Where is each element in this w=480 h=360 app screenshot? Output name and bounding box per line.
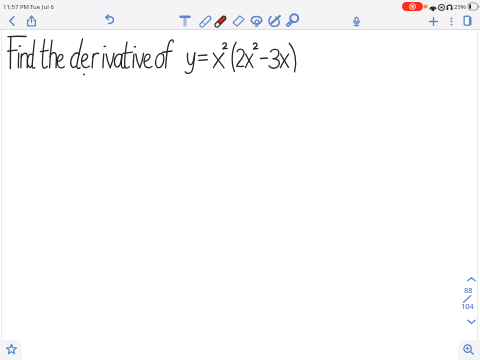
- staticText: 88: [464, 285, 473, 295]
- button[interactable]: Favorite: [0, 340, 22, 360]
- button[interactable]: Pages: [460, 13, 476, 29]
- button[interactable]: Zoom in: [458, 340, 480, 360]
- button[interactable]: Pen: [198, 13, 213, 29]
- staticText: 25%: [454, 3, 466, 11]
- button[interactable]: Highlighter: [283, 13, 300, 29]
- button[interactable]: Undo: [103, 11, 115, 27]
- button[interactable]: Lasso: [248, 13, 265, 29]
- button[interactable]: Eraser: [230, 13, 247, 29]
- button[interactable]: Text tool: [177, 13, 193, 29]
- button[interactable]: Marker: [213, 13, 228, 29]
- button[interactable]: Shapes: [266, 13, 283, 29]
- button[interactable]: Share: [23, 13, 40, 29]
- button[interactable]: Previous page: [462, 270, 480, 288]
- staticText: Tue Jul 6: [30, 3, 54, 11]
- button[interactable]: Back: [4, 13, 20, 29]
- button[interactable]: Next page: [462, 312, 480, 330]
- button[interactable]: Add: [427, 13, 440, 29]
- staticText: 11:57 PM: [3, 3, 30, 11]
- staticText: 104: [461, 301, 474, 311]
- button[interactable]: More options: [445, 13, 458, 29]
- button[interactable]: Microphone: [351, 13, 362, 29]
